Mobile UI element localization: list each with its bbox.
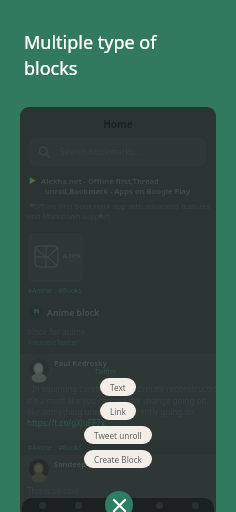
staticText: block for anime [27, 326, 86, 337]
button[interactable]: Tweet unroll [84, 426, 152, 444]
button[interactable]: Navigation item [189, 499, 201, 511]
button[interactable]: Create Block [84, 450, 152, 468]
staticText: Create Block [94, 454, 142, 465]
staticText: #Anime #Books [28, 443, 82, 452]
staticText: Home [20, 117, 216, 131]
staticText: Link [110, 406, 126, 417]
button[interactable]: Navigation item [153, 499, 165, 511]
staticText: and Markdown support [27, 211, 110, 221]
staticText: #HumbleTwitter [28, 338, 78, 347]
staticText: https://t.co/gXluFF7x [27, 417, 105, 428]
staticText: Text [110, 382, 126, 393]
staticText: Alekha.net - Offline first,Thread [41, 176, 159, 186]
staticText: This is so cool [27, 485, 79, 496]
button[interactable]: Navigation item [36, 499, 48, 511]
staticText: Tweet unroll [94, 430, 142, 441]
staticText: Paul Kedrosky [54, 358, 107, 368]
button[interactable]: Link [100, 402, 136, 420]
staticText: unroll,Bookmark - Apps on Google Play [45, 186, 191, 196]
staticText: Anime block [47, 307, 100, 319]
staticText: Offline first bookmark app with advanced… [33, 201, 211, 211]
staticText: Sandeep [54, 459, 86, 469]
button[interactable]: Navigation item [72, 499, 84, 511]
staticText: #Anime #Books [28, 286, 82, 295]
button[interactable]: Text [100, 378, 136, 396]
staticText: ALEKHA [63, 253, 81, 259]
button[interactable]: Close create menu [105, 491, 133, 512]
staticText: it's almost like you can see the change … [27, 395, 209, 406]
staticText: In squinting carefully at the climate re… [32, 383, 216, 394]
staticText: Twitter [95, 367, 117, 376]
staticText: like something unusual is currently goin… [27, 406, 197, 417]
staticText: Multiple type of blocks [24, 30, 157, 81]
